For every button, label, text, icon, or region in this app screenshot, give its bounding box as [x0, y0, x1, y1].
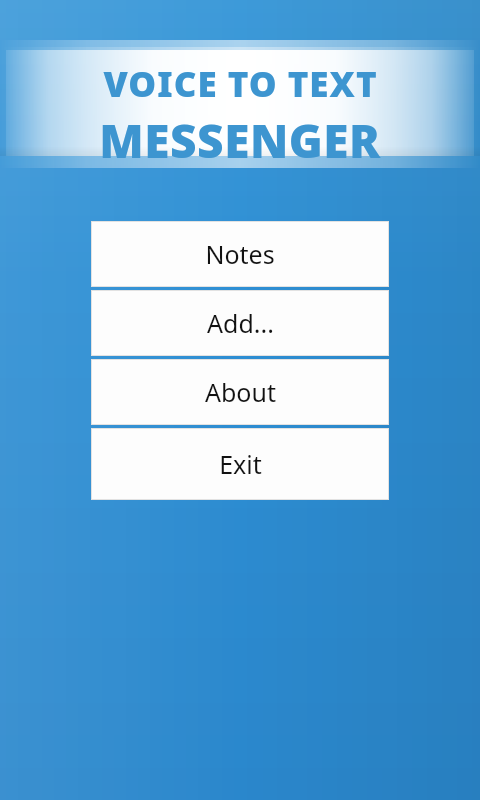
staticText: VOICE TO TEXT — [103, 60, 378, 108]
button[interactable]: Exit — [91, 428, 389, 500]
staticText: About — [205, 375, 276, 409]
staticText: MESSENGER — [99, 109, 381, 172]
staticText: Add... — [207, 306, 274, 340]
button[interactable]: About — [91, 359, 389, 425]
staticText: Exit — [219, 447, 262, 481]
button[interactable]: Notes — [91, 221, 389, 287]
staticText: Notes — [205, 237, 275, 271]
button[interactable]: Add... — [91, 290, 389, 356]
